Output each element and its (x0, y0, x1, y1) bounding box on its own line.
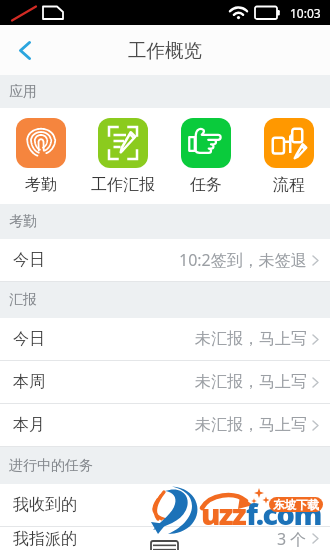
button[interactable]: 工作汇报 (82, 108, 164, 204)
staticText: 我收到的 (13, 495, 77, 515)
staticText: 汇报 (9, 291, 37, 309)
button[interactable]: 今日 (0, 239, 330, 282)
button[interactable]: 考勤 (0, 108, 82, 204)
staticText: 进行中的任务 (9, 457, 93, 475)
button[interactable]: 我收到的 (0, 484, 330, 527)
staticText: f.com (246, 494, 321, 533)
button[interactable]: 我指派的 (0, 527, 330, 550)
button[interactable]: 本月 (0, 404, 330, 447)
staticText: 应用 (9, 83, 37, 101)
staticText: 本周 (13, 372, 45, 392)
staticText: 考勤 (25, 175, 57, 195)
button[interactable]: 本周 (0, 361, 330, 404)
staticText: 工作概览 (128, 39, 202, 62)
staticText: 未汇报，马上写 (195, 329, 307, 349)
staticText: 10:2签到，未签退 (179, 249, 307, 271)
button[interactable]: 流程 (247, 108, 330, 204)
staticText: 工作汇报 (91, 175, 155, 195)
staticText: 流程 (273, 175, 305, 195)
staticText: 本月 (13, 415, 45, 435)
staticText: 任务 (190, 175, 222, 195)
staticText: 东坡下载 (273, 498, 319, 512)
button[interactable]: 今日 (0, 318, 330, 361)
staticText: 今日 (13, 329, 45, 349)
button[interactable]: Back (0, 25, 50, 75)
staticText: 我指派的 (13, 529, 77, 549)
staticText: 今日 (13, 250, 45, 270)
button[interactable]: 任务 (164, 108, 247, 204)
staticText: uzz (201, 494, 246, 533)
staticText: 未汇报，马上写 (195, 415, 307, 435)
staticText: 3 个 (277, 528, 307, 550)
staticText: 10:03 (290, 5, 321, 21)
staticText: 未汇报，马上写 (195, 372, 307, 392)
staticText: 考勤 (9, 213, 37, 231)
